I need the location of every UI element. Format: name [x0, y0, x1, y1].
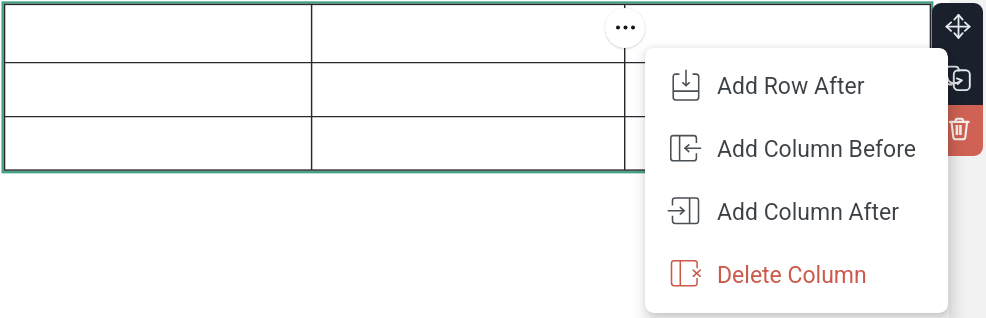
button[interactable]: Move table: [932, 3, 983, 54]
button[interactable]: Add Column Before: [645, 118, 948, 181]
staticText: Add Row After: [717, 73, 865, 100]
button[interactable]: Column options: [605, 8, 645, 48]
staticText: Add Column Before: [717, 136, 917, 163]
button[interactable]: Add Row After: [645, 55, 948, 118]
button[interactable]: Delete Column: [645, 244, 948, 307]
staticText: Add Column After: [717, 199, 900, 226]
button[interactable]: Duplicate table: [932, 54, 983, 105]
button[interactable]: Delete table: [932, 105, 983, 156]
staticText: Delete Column: [717, 262, 867, 289]
button[interactable]: Add Column After: [645, 181, 948, 244]
